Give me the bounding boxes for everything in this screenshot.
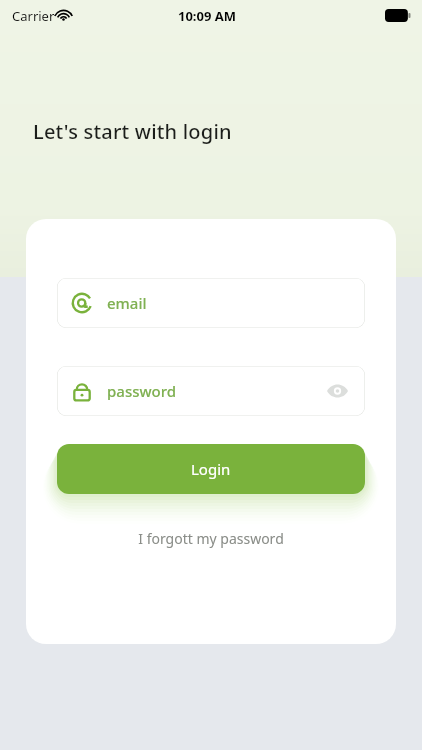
button[interactable]: Show password [325,379,349,403]
button[interactable]: I forgott my password [26,523,396,553]
staticText: Login [191,459,231,479]
staticText: I forgott my password [138,529,284,548]
button[interactable]: email [57,278,365,328]
button[interactable]: password [57,366,365,416]
staticText: password [107,381,177,401]
staticText: Let's start with login [33,118,232,145]
staticText: Carrier [12,7,55,25]
staticText: email [107,293,147,313]
staticText: 10:09 AM [178,7,237,25]
button[interactable]: Login [57,444,365,494]
